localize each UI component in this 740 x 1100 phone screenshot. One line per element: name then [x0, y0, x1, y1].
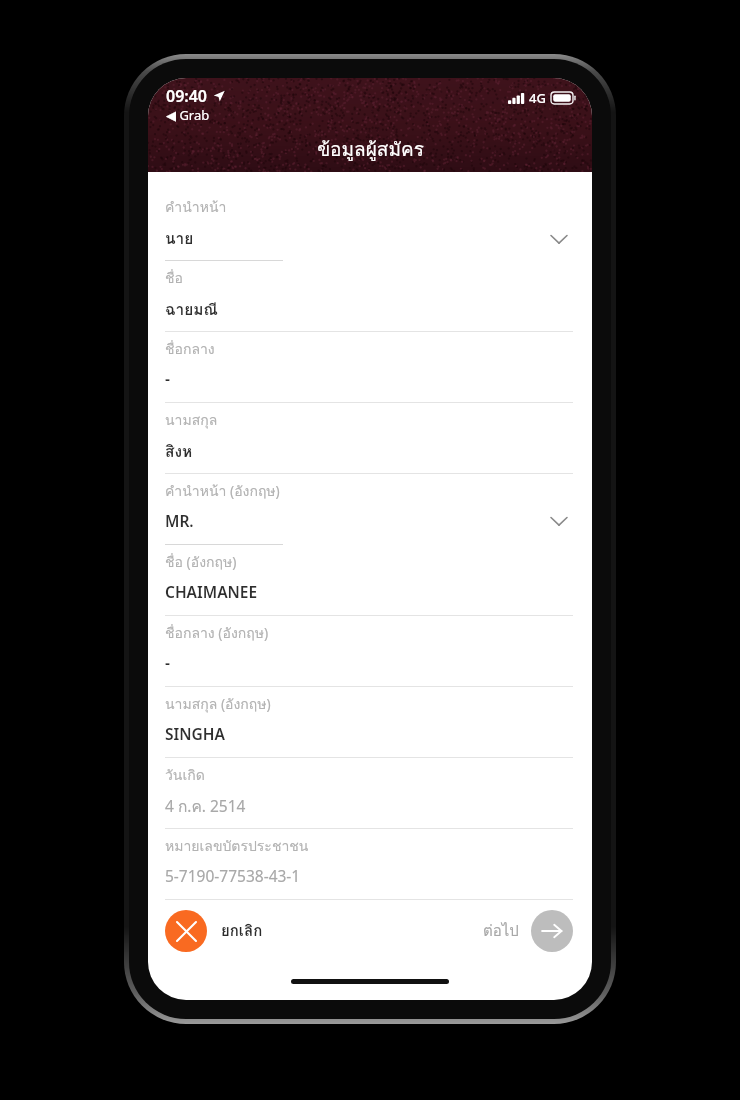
staticText: สิงห	[165, 439, 193, 464]
button[interactable]: นามสกุล	[148, 403, 592, 474]
staticText: ◀ Grab	[166, 106, 210, 124]
staticText: นามสกุล	[165, 409, 218, 431]
staticText: -	[165, 368, 170, 389]
button[interactable]: วันเกิด	[148, 758, 592, 829]
button[interactable]: นามสกุล (อังกฤษ)	[148, 687, 592, 758]
staticText: CHAIMANEE	[165, 581, 258, 602]
button[interactable]: ชื่อ	[148, 261, 592, 332]
button[interactable]: ยกเลิก	[165, 904, 263, 958]
staticText: นาย	[165, 226, 194, 251]
staticText: ยกเลิก	[221, 919, 263, 943]
staticText: 4 ก.ค. 2514	[165, 794, 246, 819]
staticText: MR.	[165, 510, 194, 531]
staticText: ฉายมณี	[165, 297, 218, 322]
staticText: คำนำหน้า (อังกฤษ)	[165, 480, 280, 502]
staticText: นามสกุล (อังกฤษ)	[165, 693, 271, 715]
button[interactable]: คำนำหน้า	[148, 190, 592, 261]
staticText: -	[165, 652, 170, 673]
staticText: ชื่อกลาง	[165, 338, 215, 360]
staticText: 09:40	[166, 85, 208, 107]
staticText: ชื่อกลาง (อังกฤษ)	[165, 622, 269, 644]
staticText: ชื่อ	[165, 267, 183, 289]
staticText: หมายเลขบัตรประชาชน	[165, 835, 309, 857]
staticText: ชื่อ (อังกฤษ)	[165, 551, 237, 573]
button[interactable]: คำนำหน้า (อังกฤษ)	[148, 474, 592, 545]
staticText: คำนำหน้า	[165, 196, 227, 218]
button[interactable]: ชื่อกลาง (อังกฤษ)	[148, 616, 592, 687]
button[interactable]: หมายเลขบัตรประชาชน	[148, 829, 592, 900]
button[interactable]: ต่อไป	[483, 904, 573, 958]
staticText: 4G	[529, 89, 546, 107]
staticText: ต่อไป	[483, 919, 519, 943]
button[interactable]: ชื่อกลาง	[148, 332, 592, 403]
button[interactable]: ชื่อ (อังกฤษ)	[148, 545, 592, 616]
staticText: ข้อมูลผู้สมัคร	[317, 134, 424, 164]
staticText: 5-7190-77538-43-1	[165, 865, 301, 886]
staticText: SINGHA	[165, 723, 225, 744]
staticText: วันเกิด	[165, 764, 205, 786]
other: Next	[531, 910, 573, 952]
